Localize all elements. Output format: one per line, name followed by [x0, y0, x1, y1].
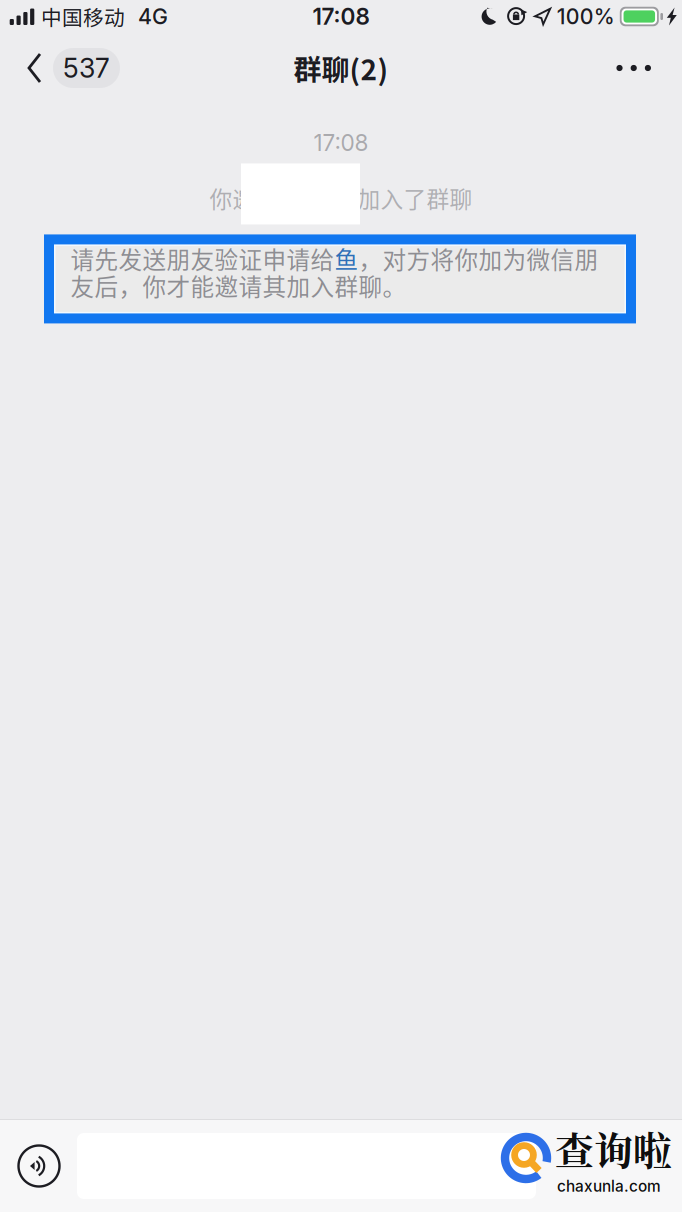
staticText: 你邀请 鱼鱼鱼 加入了群聊 — [209, 181, 472, 214]
staticText: 查询啦 — [555, 1120, 672, 1176]
staticText: 中国移动 — [41, 1, 125, 31]
staticText: 100% — [557, 4, 615, 29]
button[interactable]: More — [594, 47, 682, 89]
staticText: 群聊(2) — [293, 48, 388, 88]
staticText: 17:08 — [312, 3, 369, 30]
button[interactable]: Message input field — [77, 1133, 536, 1199]
button[interactable]: Voice input — [0, 1144, 77, 1188]
staticText: 请先发送朋友验证申请给鱼，对方将你加为微信朋友后，你才能邀请其加入群聊。 — [70, 245, 598, 299]
staticText: 4G — [138, 4, 168, 29]
button[interactable]: Back, 537 unread — [0, 40, 120, 96]
staticText: 537 — [63, 52, 110, 84]
staticText: 17:08 — [313, 129, 368, 156]
staticText: chaxunla.com — [557, 1177, 661, 1196]
